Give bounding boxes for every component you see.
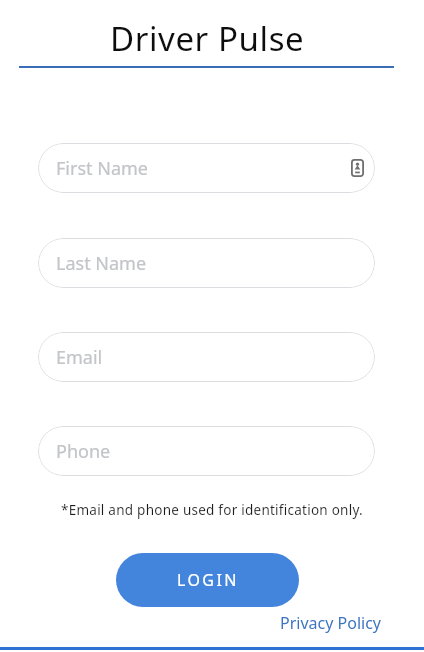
- button[interactable]: Email: [38, 332, 375, 382]
- staticText: Phone: [56, 439, 111, 464]
- staticText: LOGIN: [177, 569, 239, 591]
- button[interactable]: Last Name: [38, 238, 375, 288]
- staticText: *Email and phone used for identification…: [61, 501, 363, 519]
- button[interactable]: Phone: [38, 426, 375, 476]
- button[interactable]: First Name: [38, 143, 375, 193]
- staticText: Driver Pulse: [110, 16, 305, 61]
- staticText: Email: [56, 345, 103, 370]
- staticText: First Name: [56, 156, 148, 181]
- button[interactable]: LOGIN: [116, 553, 299, 607]
- button[interactable]: Privacy Policy: [280, 612, 381, 634]
- staticText: Last Name: [56, 251, 147, 276]
